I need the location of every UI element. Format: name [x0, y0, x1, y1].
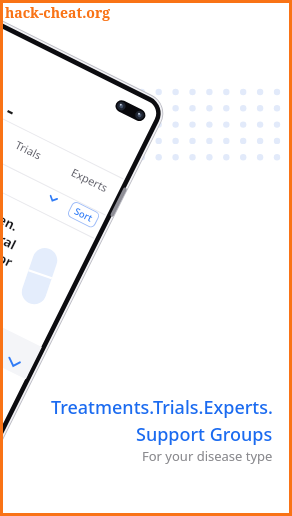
staticText: Treatments.Trials.Experts.: [51, 395, 273, 420]
staticText: For your disease type: [142, 447, 273, 465]
staticText: Support Groups: [136, 422, 273, 447]
staticText: hack-cheat.org: [5, 3, 111, 22]
